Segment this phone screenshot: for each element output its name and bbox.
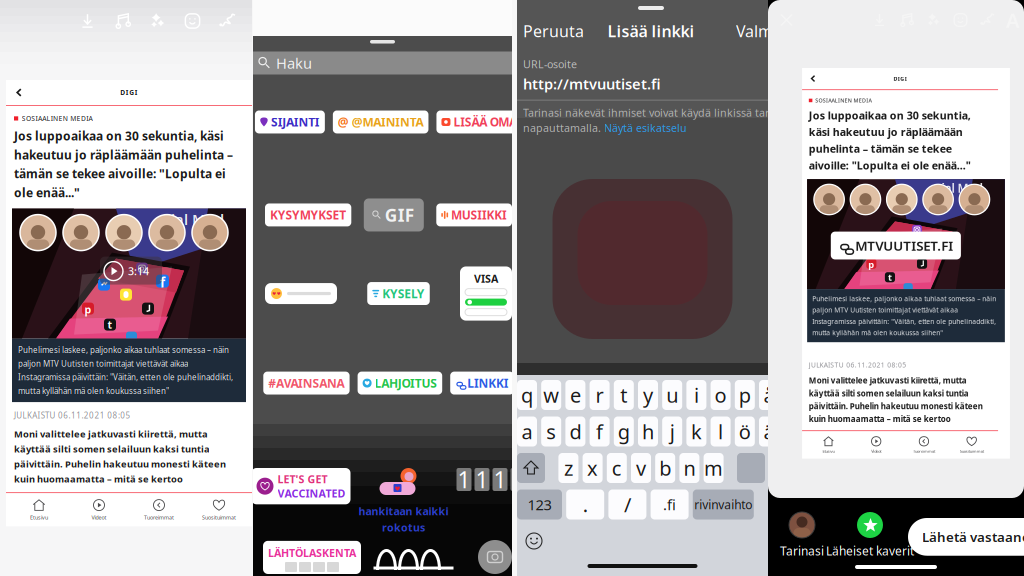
button[interactable]: Videot xyxy=(852,431,900,459)
staticText: LISÄÄ OMA xyxy=(453,114,517,130)
button[interactable]: Back xyxy=(6,82,32,103)
staticText: Videot xyxy=(871,449,881,454)
button[interactable]: MUSIIKKI xyxy=(436,203,512,226)
button[interactable]: Slider sticker xyxy=(265,283,337,304)
button[interactable]: b xyxy=(655,453,675,483)
button[interactable]: Vaccination sticker xyxy=(358,468,448,534)
button[interactable]: GIF xyxy=(364,198,424,231)
button[interactable]: Emoji xyxy=(526,533,542,549)
button[interactable]: c xyxy=(607,453,627,483)
button[interactable]: KYSELY xyxy=(367,282,430,305)
button[interactable]: .fi xyxy=(651,489,689,519)
button[interactable]: Näytä esikatselu xyxy=(604,121,687,135)
staticText: a xyxy=(521,418,532,445)
staticText: s xyxy=(546,418,556,445)
button[interactable]: i xyxy=(686,380,706,410)
button[interactable]: Valmis xyxy=(736,20,785,42)
button[interactable]: Effects xyxy=(140,12,175,29)
button[interactable]: e xyxy=(565,380,585,410)
button[interactable]: SIJAINTI xyxy=(255,110,325,133)
button[interactable]: j xyxy=(662,416,682,446)
button[interactable]: r xyxy=(590,380,610,410)
button[interactable]: n xyxy=(679,453,699,483)
button[interactable]: Countdown sticker xyxy=(263,541,361,574)
button[interactable]: Etusivu xyxy=(9,493,69,526)
staticText: Suosituimmat xyxy=(960,449,984,454)
button[interactable]: t xyxy=(614,380,634,410)
button[interactable]: Quiz sticker xyxy=(460,266,512,321)
button[interactable]: s xyxy=(541,416,561,446)
button[interactable]: q xyxy=(517,380,537,410)
staticText: Suosituimmat xyxy=(202,514,236,521)
staticText: MUSIIKKI xyxy=(451,207,507,223)
staticText: f xyxy=(596,418,603,445)
button[interactable]: Tuoreimmat xyxy=(900,431,948,459)
button[interactable]: / xyxy=(608,489,646,519)
button[interactable]: Videot xyxy=(69,493,129,526)
button[interactable]: Peruuta xyxy=(523,20,584,42)
staticText: 3:14 xyxy=(128,264,149,278)
button[interactable]: rivinvaihto xyxy=(693,489,754,519)
button[interactable]: LAHJOITUS xyxy=(358,372,442,394)
button[interactable]: 123 xyxy=(517,489,562,519)
button[interactable]: Music xyxy=(105,12,140,29)
staticText: 7 xyxy=(511,464,524,494)
button[interactable]: Draw xyxy=(210,12,245,29)
button[interactable]: Lähetä vastaanottajalle xyxy=(908,518,1024,556)
button[interactable]: f xyxy=(590,416,610,446)
button[interactable]: Let's get vaccinated sticker xyxy=(251,468,350,504)
staticText: c xyxy=(612,455,622,481)
button[interactable]: Suosituimmat xyxy=(948,431,995,459)
button[interactable]: x xyxy=(583,453,603,483)
button[interactable]: å xyxy=(759,380,779,410)
button[interactable]: d xyxy=(565,416,585,446)
button[interactable]: . xyxy=(566,489,604,519)
button[interactable]: ä xyxy=(759,416,779,446)
button[interactable]: g xyxy=(614,416,634,446)
staticText: Peruuta xyxy=(523,20,584,42)
staticText: JULKAISTU 06.11.2021 08:05 xyxy=(809,360,906,369)
button[interactable]: l xyxy=(711,416,731,446)
button[interactable]: Save xyxy=(70,12,105,29)
button[interactable]: Tarinasi xyxy=(780,512,824,559)
button[interactable]: p xyxy=(735,380,755,410)
button[interactable]: y xyxy=(638,380,658,410)
button[interactable]: #AVAINSANA xyxy=(263,372,350,394)
staticText: Läheiset kaverit xyxy=(826,543,914,559)
button[interactable]: Camera xyxy=(478,540,512,574)
button[interactable]: Shift xyxy=(517,453,545,483)
staticText: . xyxy=(583,491,588,518)
button[interactable]: Delete xyxy=(737,453,765,483)
button[interactable]: w xyxy=(541,380,561,410)
button[interactable]: LISÄÄ OMA xyxy=(436,110,522,133)
button[interactable]: Stickers xyxy=(175,12,210,29)
button[interactable]: Text xyxy=(1001,7,1024,33)
button[interactable]: k xyxy=(686,416,706,446)
button[interactable]: a xyxy=(517,416,537,446)
staticText: SOSIAALINEN MEDIA xyxy=(22,114,92,123)
button[interactable]: ö xyxy=(735,416,755,446)
button[interactable]: LINKKI xyxy=(450,372,514,394)
button[interactable]: h xyxy=(638,416,658,446)
button[interactable]: Etusivu xyxy=(805,431,852,459)
staticText: r xyxy=(596,382,604,408)
button[interactable]: Suosituimmat xyxy=(189,493,249,526)
button[interactable]: v xyxy=(631,453,651,483)
button[interactable]: u xyxy=(662,380,682,410)
staticText: i xyxy=(694,382,699,408)
button[interactable]: Back xyxy=(802,70,824,87)
staticText: t xyxy=(107,317,112,332)
button[interactable]: @ xyxy=(333,110,428,133)
button[interactable]: KYSYMYKSET xyxy=(265,203,351,226)
button[interactable]: o xyxy=(711,380,731,410)
button[interactable]: z xyxy=(558,453,578,483)
button[interactable]: Tuoreimmat xyxy=(129,493,189,526)
button[interactable]: m xyxy=(704,453,724,483)
button[interactable]: Läheiset kaverit xyxy=(826,512,914,559)
